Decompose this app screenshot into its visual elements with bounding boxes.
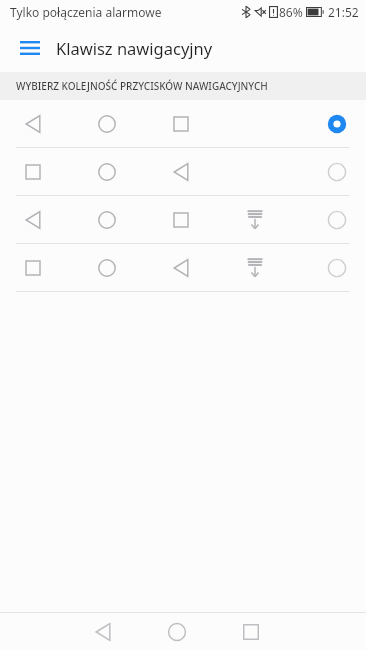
button[interactable] (0, 100, 366, 148)
button[interactable]: Back (77, 613, 129, 650)
button[interactable]: Home (151, 613, 203, 650)
staticText: 86% (279, 4, 303, 20)
button[interactable]: Recent apps (225, 613, 277, 650)
staticText: WYBIERZ KOLEJNOŚĆ PRZYCISKÓW NAWIGACYJNY… (16, 79, 268, 93)
button[interactable] (0, 244, 366, 292)
button[interactable] (0, 148, 366, 196)
staticText: Klawisz nawigacyjny (56, 37, 213, 59)
staticText: Tylko połączenia alarmowe (10, 4, 162, 20)
button[interactable] (0, 196, 366, 244)
button[interactable]: Menu (10, 28, 50, 68)
staticText: 21:52 (328, 4, 359, 20)
